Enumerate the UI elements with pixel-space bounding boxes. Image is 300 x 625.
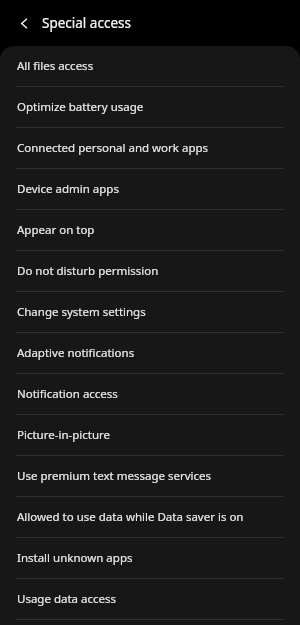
button[interactable]: Picture-in-picture [0,415,300,455]
button[interactable]: Change system settings [0,292,300,332]
button[interactable]: Do not disturb permission [0,251,300,291]
button[interactable]: Notification access [0,374,300,414]
staticText: Install unknown apps [17,550,133,566]
staticText: Usage data access [17,591,117,607]
staticText: Device admin apps [17,181,119,197]
button[interactable]: Install unknown apps [0,538,300,578]
staticText: Adaptive notifications [17,345,135,361]
staticText: Notification access [17,386,118,402]
staticText: Do not disturb permission [17,263,159,279]
staticText: Change system settings [17,304,146,320]
button[interactable]: Device admin apps [0,169,300,209]
staticText: All files access [17,58,94,74]
button[interactable]: Appear on top [0,210,300,250]
staticText: Special access [42,14,131,32]
button[interactable]: Adaptive notifications [0,333,300,373]
staticText: Appear on top [17,222,95,238]
button[interactable]: Connected personal and work apps [0,128,300,168]
button[interactable]: Usage data access [0,579,300,619]
button[interactable]: All files access [0,46,300,86]
staticText: Connected personal and work apps [17,140,209,156]
button[interactable]: Optimize battery usage [0,87,300,127]
button[interactable]: Use premium text message services [0,456,300,496]
staticText: Use premium text message services [17,468,211,484]
button[interactable]: Allowed to use data while Data saver is … [0,497,300,537]
staticText: Picture-in-picture [17,427,111,443]
button[interactable]: Back [13,11,37,35]
staticText: Allowed to use data while Data saver is … [17,509,244,525]
staticText: Optimize battery usage [17,99,144,115]
